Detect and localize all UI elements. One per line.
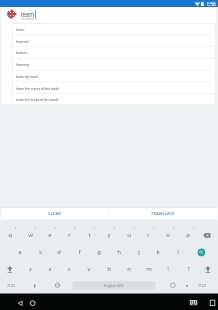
staticText: w xyxy=(28,231,33,239)
staticText: , xyxy=(34,282,36,289)
staticText: g xyxy=(97,248,101,256)
staticText: learn the ropes of the trade xyxy=(16,86,60,91)
button[interactable]: learn the ropes of the trade xyxy=(12,82,215,94)
button[interactable]: learning xyxy=(12,58,215,70)
button[interactable] xyxy=(206,296,218,310)
staticText: CLEAR xyxy=(48,211,62,217)
staticText: English (US) xyxy=(104,283,124,288)
staticText: learned xyxy=(16,39,29,44)
button[interactable]: CLEAR xyxy=(1,208,109,219)
button[interactable]: English (US) xyxy=(72,281,155,289)
staticText: ?123 xyxy=(198,283,206,288)
button[interactable] xyxy=(26,296,40,310)
staticText: learner xyxy=(16,50,28,55)
staticText: j xyxy=(138,248,140,256)
staticText: learning xyxy=(16,62,30,67)
staticText: c xyxy=(68,265,71,273)
staticText: y xyxy=(107,231,111,239)
button[interactable]: learn by heart xyxy=(12,70,215,82)
staticText: e xyxy=(48,231,52,239)
staticText: t xyxy=(88,231,91,239)
button[interactable] xyxy=(186,296,200,310)
staticText: q xyxy=(8,231,12,239)
button[interactable] xyxy=(194,245,209,260)
button[interactable]: TRANSLATE xyxy=(109,208,217,219)
staticText: l xyxy=(177,248,179,256)
staticText: h xyxy=(117,248,121,256)
staticText: TRANSLATE xyxy=(151,211,175,217)
staticText: learn xyxy=(21,10,34,18)
staticText: 1:56 xyxy=(206,1,216,7)
staticText: k xyxy=(156,248,160,256)
staticText: m xyxy=(146,265,152,273)
staticText: i xyxy=(147,231,149,239)
button[interactable]: learn xyxy=(12,23,215,35)
staticText: o xyxy=(166,231,170,239)
staticText: s xyxy=(39,248,42,256)
staticText: a xyxy=(18,248,22,256)
staticText: f xyxy=(78,248,81,256)
staticText: learn the tricks of the trade xyxy=(16,97,59,102)
staticText: x xyxy=(48,265,52,273)
staticText: ! xyxy=(167,265,169,273)
button[interactable]: learn the tricks of the trade xyxy=(12,93,215,105)
button[interactable]: learner xyxy=(12,46,215,58)
staticText: learn by heart xyxy=(16,74,39,79)
staticText: z xyxy=(29,265,32,273)
staticText: v xyxy=(87,265,91,273)
staticText: ?123 xyxy=(7,283,15,288)
staticText: learn xyxy=(16,27,25,32)
button[interactable]: learned xyxy=(12,35,215,47)
staticText: p xyxy=(186,231,190,239)
staticText: d xyxy=(57,248,61,256)
button[interactable] xyxy=(13,296,28,310)
staticText: r xyxy=(68,231,71,239)
staticText: u xyxy=(127,231,131,239)
staticText: n xyxy=(127,265,131,273)
staticText: b xyxy=(107,265,111,273)
staticText: ? xyxy=(187,265,190,273)
button[interactable] xyxy=(198,228,216,242)
